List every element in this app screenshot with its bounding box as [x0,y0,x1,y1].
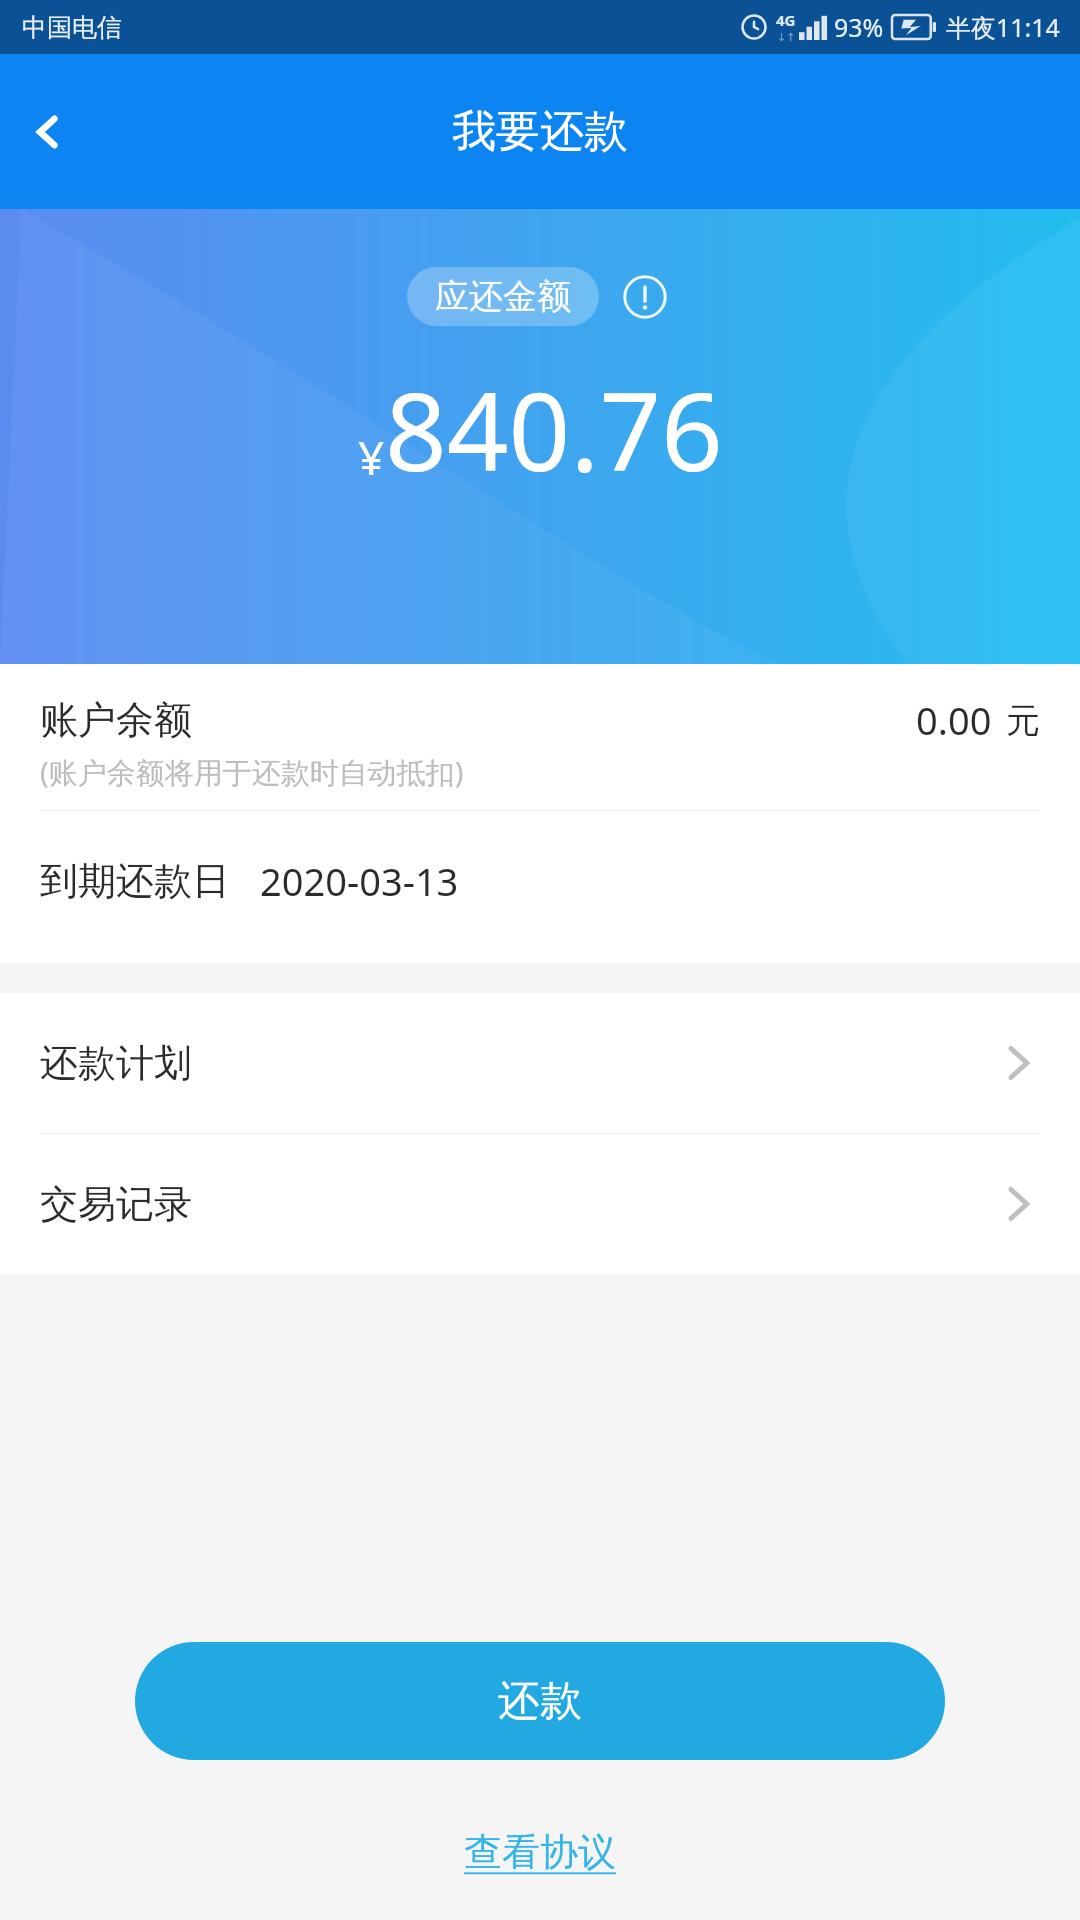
button[interactable]: 还款计划 [0,993,1080,1133]
staticText: 0.00 [916,694,992,746]
staticText: 我要还款 [452,104,628,159]
staticText: 到期还款日 [40,857,230,905]
staticText: 2020-03-13 [260,855,459,907]
staticText: 4G [776,10,796,30]
button[interactable]: 应还金额 [435,275,571,318]
staticText: 中国电信 [22,12,122,43]
staticText: ↓↑ [777,31,796,44]
staticText: 840.76 [385,356,723,503]
staticText: 93% [834,10,884,44]
staticText: 还款计划 [40,1039,192,1087]
staticText: 元 [1006,699,1040,742]
staticText: 还款 [498,1675,582,1728]
button[interactable]: 说明 [617,269,673,325]
button[interactable]: 交易记录 [0,1134,1080,1274]
button[interactable]: 查看协议 [440,1820,640,1884]
staticText: 应还金额 [435,275,571,318]
staticText: 半夜11:14 [946,10,1060,44]
staticText: 查看协议 [464,1828,616,1876]
staticText: 账户余额 [40,696,192,744]
staticText: (账户余额将用于还款时自动抵扣) [40,752,464,792]
staticText: ¥ [358,426,385,489]
button[interactable]: 还款 [135,1642,945,1760]
staticText: 交易记录 [40,1180,192,1228]
button[interactable]: Back [0,84,96,180]
